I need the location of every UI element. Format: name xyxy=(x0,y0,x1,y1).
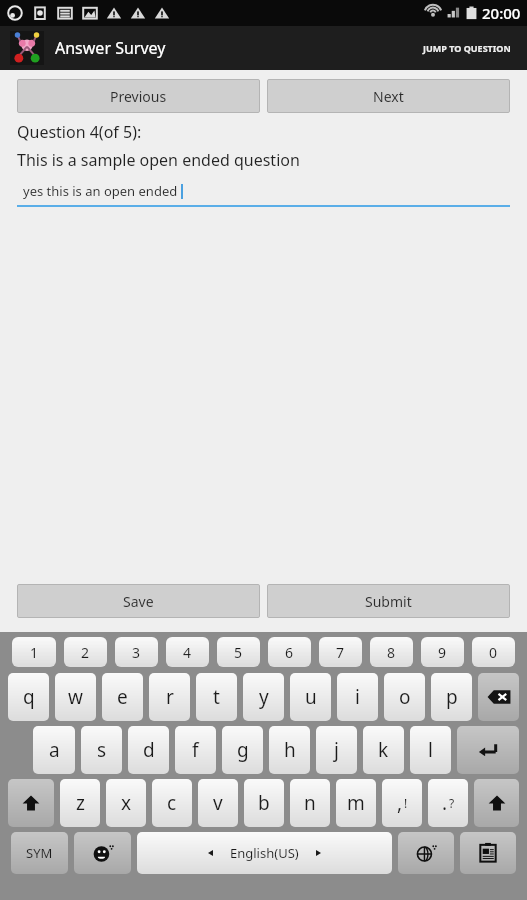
staticText: yes this is an open ended xyxy=(23,182,178,200)
other: Backspace xyxy=(478,673,519,721)
button[interactable]: g xyxy=(222,726,263,774)
staticText: 9 xyxy=(438,643,447,662)
button[interactable]: Next xyxy=(267,79,510,113)
button[interactable]: English(US) xyxy=(137,832,392,874)
staticText: e xyxy=(117,684,128,710)
button[interactable]: Previous xyxy=(17,79,260,113)
button[interactable]: x xyxy=(106,779,146,827)
button[interactable]: 2 xyxy=(64,637,107,667)
button[interactable]: SYM xyxy=(11,832,68,874)
button[interactable]: z xyxy=(60,779,100,827)
button[interactable]: Emoji xyxy=(74,832,131,874)
staticText: i xyxy=(355,684,360,710)
button[interactable]: p xyxy=(431,673,472,721)
button[interactable]: q xyxy=(8,673,49,721)
button[interactable]: Enter xyxy=(457,726,519,774)
button[interactable]: Clipboard xyxy=(460,832,516,874)
other: Change language xyxy=(398,832,454,874)
staticText: r xyxy=(166,684,174,710)
staticText: Question 4(of 5): xyxy=(17,121,142,143)
staticText: 8 xyxy=(387,643,396,662)
button[interactable]: Change language xyxy=(398,832,454,874)
staticText: 0 xyxy=(489,643,498,662)
staticText: ? xyxy=(449,795,455,811)
other: Shift xyxy=(474,779,519,827)
button[interactable]: u xyxy=(290,673,331,721)
button[interactable]: w xyxy=(55,673,96,721)
other: Emoji xyxy=(74,832,131,874)
button[interactable]: n xyxy=(290,779,330,827)
button[interactable]: b xyxy=(244,779,284,827)
button[interactable]: Backspace xyxy=(478,673,519,721)
staticText: v xyxy=(213,790,223,816)
staticText: h xyxy=(284,737,296,763)
staticText: w xyxy=(68,684,83,710)
button[interactable]: c xyxy=(152,779,192,827)
staticText: b xyxy=(258,790,270,816)
staticText: , xyxy=(397,790,403,816)
button[interactable]: v xyxy=(198,779,238,827)
button[interactable]: e xyxy=(102,673,143,721)
staticText: . xyxy=(442,790,448,816)
staticText: English(US) xyxy=(230,844,299,862)
button[interactable]: h xyxy=(269,726,310,774)
button[interactable]: 6 xyxy=(268,637,311,667)
button[interactable]: d xyxy=(128,726,169,774)
staticText: 7 xyxy=(336,643,345,662)
button[interactable]: 3 xyxy=(115,637,158,667)
button[interactable]: 8 xyxy=(370,637,413,667)
staticText: z xyxy=(76,790,85,816)
staticText: 20:00 xyxy=(482,3,521,23)
staticText: y xyxy=(259,684,269,710)
staticText: p xyxy=(446,684,458,710)
staticText: g xyxy=(237,737,249,763)
button[interactable]: Shift xyxy=(474,779,519,827)
staticText: x xyxy=(121,790,132,816)
staticText: l xyxy=(428,737,433,763)
staticText: Submit xyxy=(365,592,412,611)
button[interactable]: r xyxy=(149,673,190,721)
button[interactable]: m xyxy=(336,779,376,827)
other: Shift xyxy=(8,779,54,827)
staticText: SYM xyxy=(26,844,53,862)
button[interactable]: i xyxy=(337,673,378,721)
button[interactable]: 7 xyxy=(319,637,362,667)
staticText: q xyxy=(23,684,35,710)
staticText: j xyxy=(334,737,339,763)
button[interactable]: 5 xyxy=(217,637,260,667)
staticText: m xyxy=(347,790,365,816)
button[interactable]: y xyxy=(243,673,284,721)
button[interactable]: Submit xyxy=(267,584,510,618)
button[interactable]: 1 xyxy=(12,637,56,667)
button[interactable]: l xyxy=(410,726,451,774)
other: Clipboard xyxy=(460,832,516,874)
button[interactable]: k xyxy=(363,726,404,774)
staticText: 5 xyxy=(234,643,243,662)
button[interactable]: Save xyxy=(17,584,260,618)
staticText: 4 xyxy=(183,643,192,662)
staticText: d xyxy=(143,737,155,763)
button[interactable]: JUMP TO QUESTION xyxy=(417,34,517,62)
button[interactable]: 4 xyxy=(166,637,209,667)
button[interactable]: t xyxy=(196,673,237,721)
other: Enter xyxy=(457,726,519,774)
staticText: Previous xyxy=(110,87,167,106)
button[interactable]: a xyxy=(33,726,75,774)
button[interactable]: Shift xyxy=(8,779,54,827)
staticText: u xyxy=(305,684,317,710)
button[interactable]: j xyxy=(316,726,357,774)
staticText: This is a sample open ended question xyxy=(17,149,300,171)
button[interactable]: . xyxy=(428,779,468,827)
button[interactable]: 0 xyxy=(472,637,515,667)
button[interactable]: , xyxy=(382,779,422,827)
button[interactable]: f xyxy=(175,726,216,774)
staticText: o xyxy=(399,684,411,710)
staticText: 1 xyxy=(30,643,39,662)
staticText: 2 xyxy=(81,643,90,662)
button[interactable]: s xyxy=(81,726,122,774)
staticText: c xyxy=(167,790,177,816)
staticText: f xyxy=(192,737,199,763)
button[interactable]: yes this is an open ended xyxy=(17,179,510,207)
button[interactable]: o xyxy=(384,673,425,721)
button[interactable]: 9 xyxy=(421,637,464,667)
